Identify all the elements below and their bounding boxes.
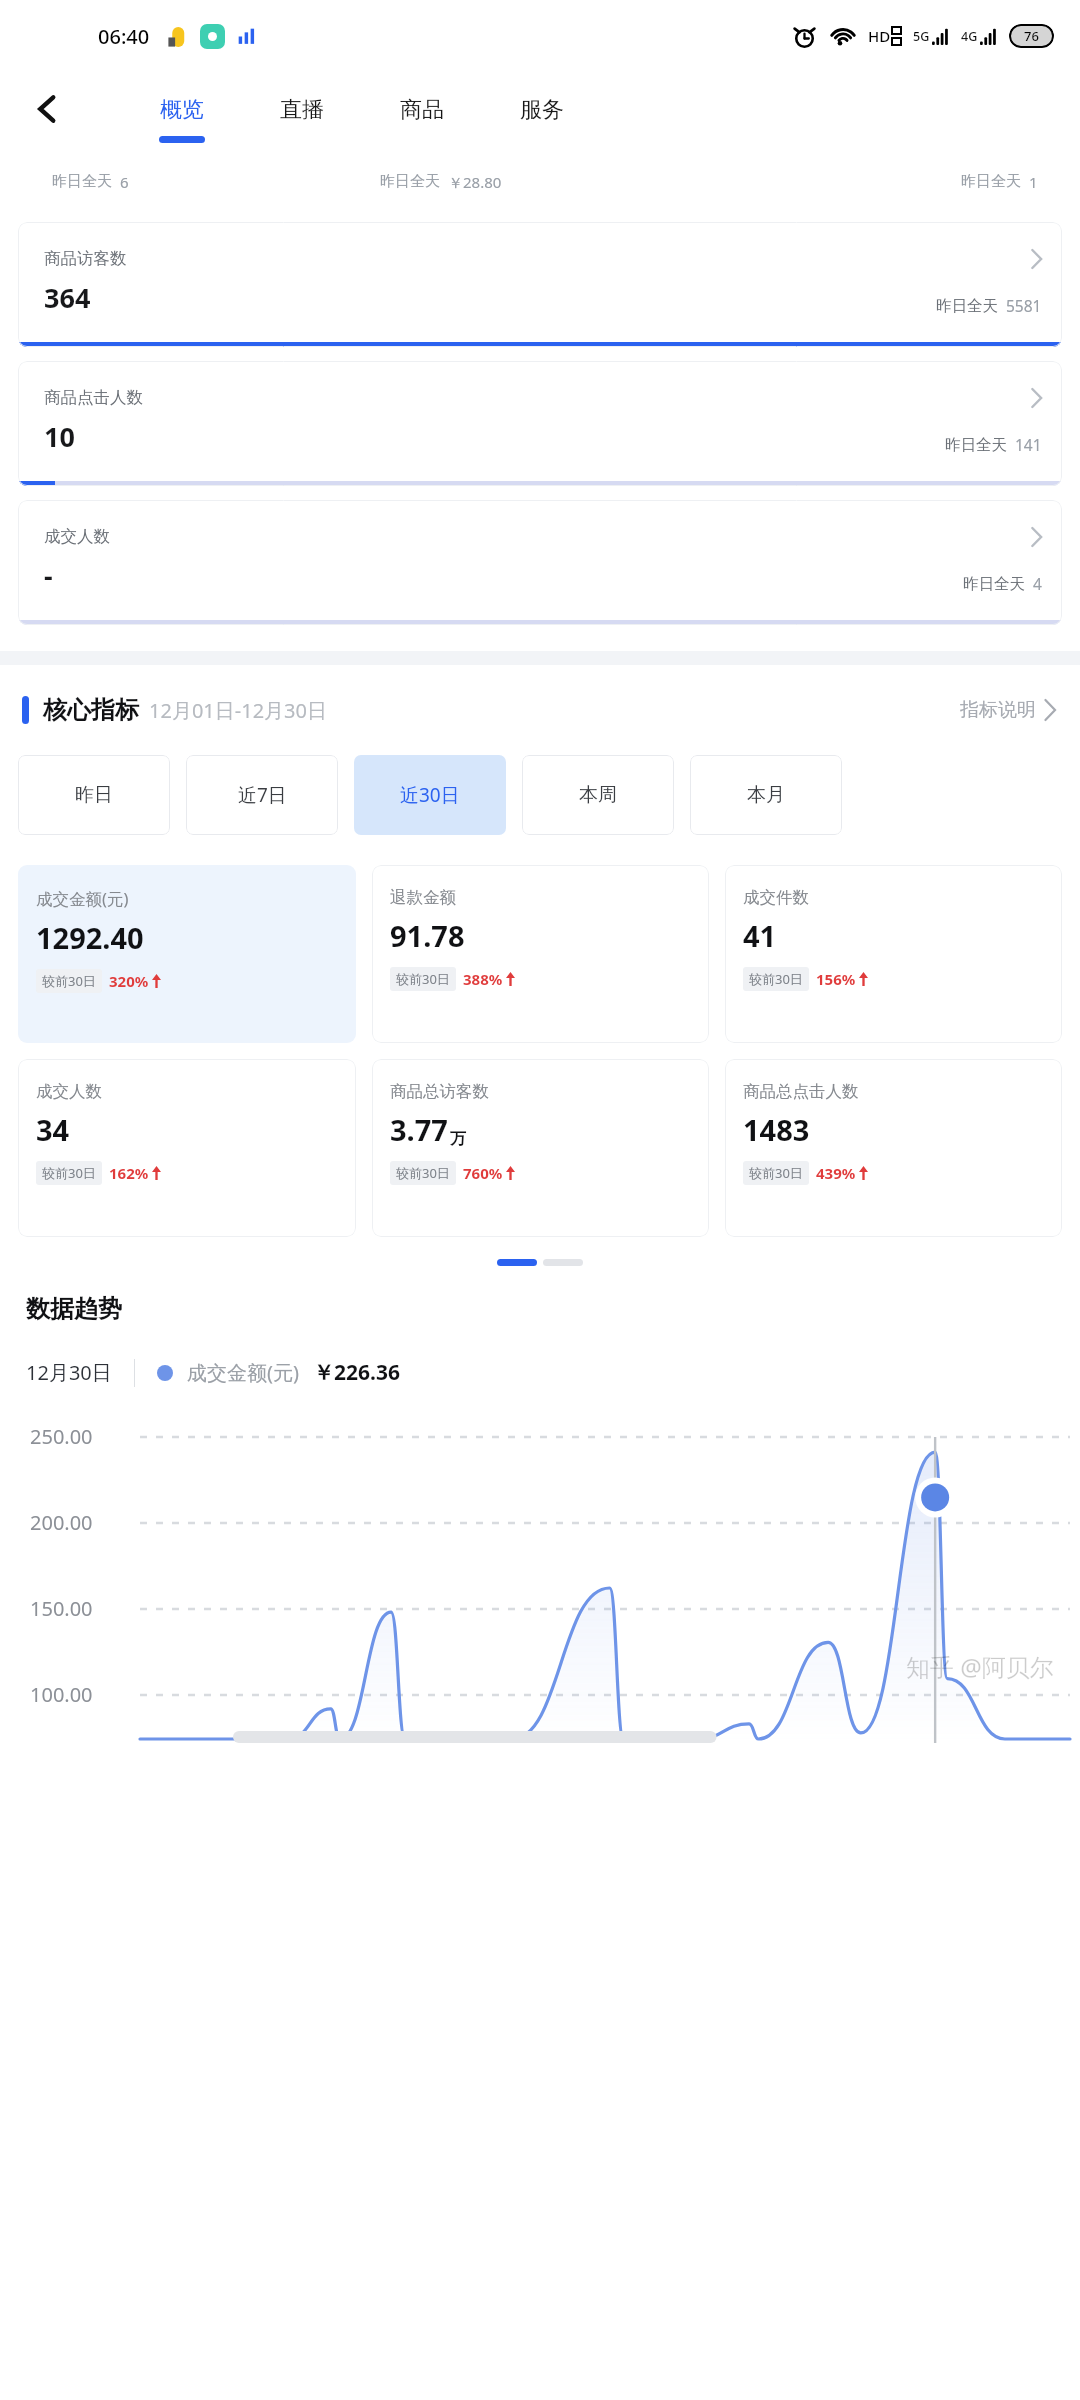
staticText: 250.00	[30, 1423, 93, 1450]
staticText: ￥28.80	[448, 172, 502, 192]
staticText: 近30日	[400, 782, 460, 808]
button[interactable]: 成交金额(元)	[18, 865, 356, 1043]
staticText: 388%	[463, 969, 503, 989]
staticText: 1483	[743, 1110, 810, 1149]
staticText: 万	[450, 1129, 466, 1149]
staticText: 4G	[961, 28, 978, 45]
staticText: 直播	[280, 96, 324, 124]
staticText: 较前30日	[42, 972, 96, 990]
staticText: 162%	[109, 1163, 149, 1183]
staticText: -	[44, 557, 53, 594]
staticText: 34	[36, 1110, 70, 1149]
staticText: 服务	[520, 96, 564, 124]
staticText: 退款金额	[390, 887, 456, 908]
staticText: 昨日全天	[945, 435, 1007, 455]
staticText: 760%	[463, 1163, 503, 1183]
staticText: 商品	[400, 96, 444, 124]
staticText: 指标说明	[960, 698, 1036, 722]
button[interactable]: 退款金额	[372, 865, 709, 1043]
staticText: 较前30日	[749, 1164, 803, 1182]
staticText: 商品总访客数	[390, 1081, 489, 1102]
staticText: 本周	[579, 783, 617, 807]
button[interactable]: 商品总点击人数	[725, 1059, 1062, 1237]
staticText: 数据趋势	[26, 1294, 122, 1324]
staticText: 100.00	[30, 1681, 93, 1708]
staticText: 较前30日	[396, 1164, 450, 1182]
staticText: 昨日全天	[380, 172, 440, 191]
staticText: 3.77	[390, 1110, 448, 1149]
button[interactable]: 商品	[362, 74, 482, 172]
button[interactable]: 昨日	[18, 755, 170, 835]
staticText: 5G	[913, 28, 930, 45]
staticText: 6	[120, 172, 129, 192]
button[interactable]: Back	[18, 80, 76, 138]
button[interactable]: 指标说明	[960, 698, 1056, 722]
staticText: 昨日全天	[963, 574, 1025, 594]
staticText: 06:40	[98, 23, 150, 50]
staticText: 1	[1029, 172, 1038, 192]
staticText: 41	[743, 916, 777, 955]
button[interactable]: 成交人数	[18, 1059, 356, 1237]
button[interactable]: 概览	[122, 74, 242, 172]
staticText: 较前30日	[396, 970, 450, 988]
staticText: 商品访客数	[44, 248, 127, 269]
button[interactable]: 成交人数	[18, 500, 1062, 625]
button[interactable]: 近7日	[186, 755, 338, 835]
staticText: 昨日	[75, 783, 113, 807]
staticText: 知乎 @阿贝尔	[906, 1650, 1054, 1683]
staticText: 10	[44, 418, 75, 455]
staticText: 150.00	[30, 1595, 93, 1622]
staticText: 1292.40	[36, 918, 144, 957]
staticText: 141	[1015, 434, 1042, 455]
button[interactable]: 本周	[522, 755, 674, 835]
staticText: 商品点击人数	[44, 387, 143, 408]
staticText: 156%	[816, 969, 856, 989]
button[interactable]: 直播	[242, 74, 362, 172]
staticText: 昨日全天	[961, 172, 1021, 191]
staticText: 较前30日	[42, 1164, 96, 1182]
staticText: 昨日全天	[936, 296, 998, 316]
staticText: ￥226.36	[313, 1358, 400, 1387]
staticText: 12月30日	[26, 1359, 112, 1386]
staticText: 昨日全天	[52, 172, 112, 191]
staticText: 概览	[160, 96, 204, 124]
staticText: 成交金额(元)	[187, 1359, 299, 1386]
button[interactable]: 近30日	[354, 755, 506, 835]
staticText: HD	[868, 26, 891, 46]
staticText: 本月	[747, 783, 785, 807]
staticText: 439%	[816, 1163, 856, 1183]
staticText: 200.00	[30, 1509, 93, 1536]
staticText: 成交人数	[44, 526, 110, 547]
button[interactable]: 商品点击人数	[18, 361, 1062, 486]
staticText: 核心指标	[43, 695, 139, 725]
staticText: 较前30日	[749, 970, 803, 988]
staticText: 4	[1033, 573, 1042, 594]
staticText: 成交件数	[743, 887, 809, 908]
button[interactable]: 本月	[690, 755, 842, 835]
staticText: 12月01日-12月30日	[149, 697, 327, 724]
staticText: 5581	[1006, 295, 1042, 316]
button[interactable]: 商品访客数	[18, 222, 1062, 347]
staticText: 成交金额(元)	[36, 887, 129, 910]
staticText: 76	[1024, 27, 1039, 45]
staticText: 91.78	[390, 916, 465, 955]
staticText: 364	[44, 279, 91, 316]
staticText: 成交人数	[36, 1081, 102, 1102]
staticText: 商品总点击人数	[743, 1081, 859, 1102]
staticText: 320%	[109, 971, 149, 991]
button[interactable]: 成交件数	[725, 865, 1062, 1043]
button[interactable]: 商品总访客数	[372, 1059, 709, 1237]
button[interactable]: 服务	[482, 74, 602, 172]
staticText: 近7日	[238, 782, 287, 808]
